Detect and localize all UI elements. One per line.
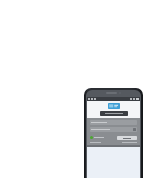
button[interactable] — [90, 135, 104, 140]
button[interactable] — [90, 127, 137, 132]
button[interactable]: App logo — [108, 103, 120, 109]
button[interactable] — [90, 120, 137, 125]
button[interactable] — [117, 136, 137, 140]
button[interactable] — [100, 111, 128, 116]
